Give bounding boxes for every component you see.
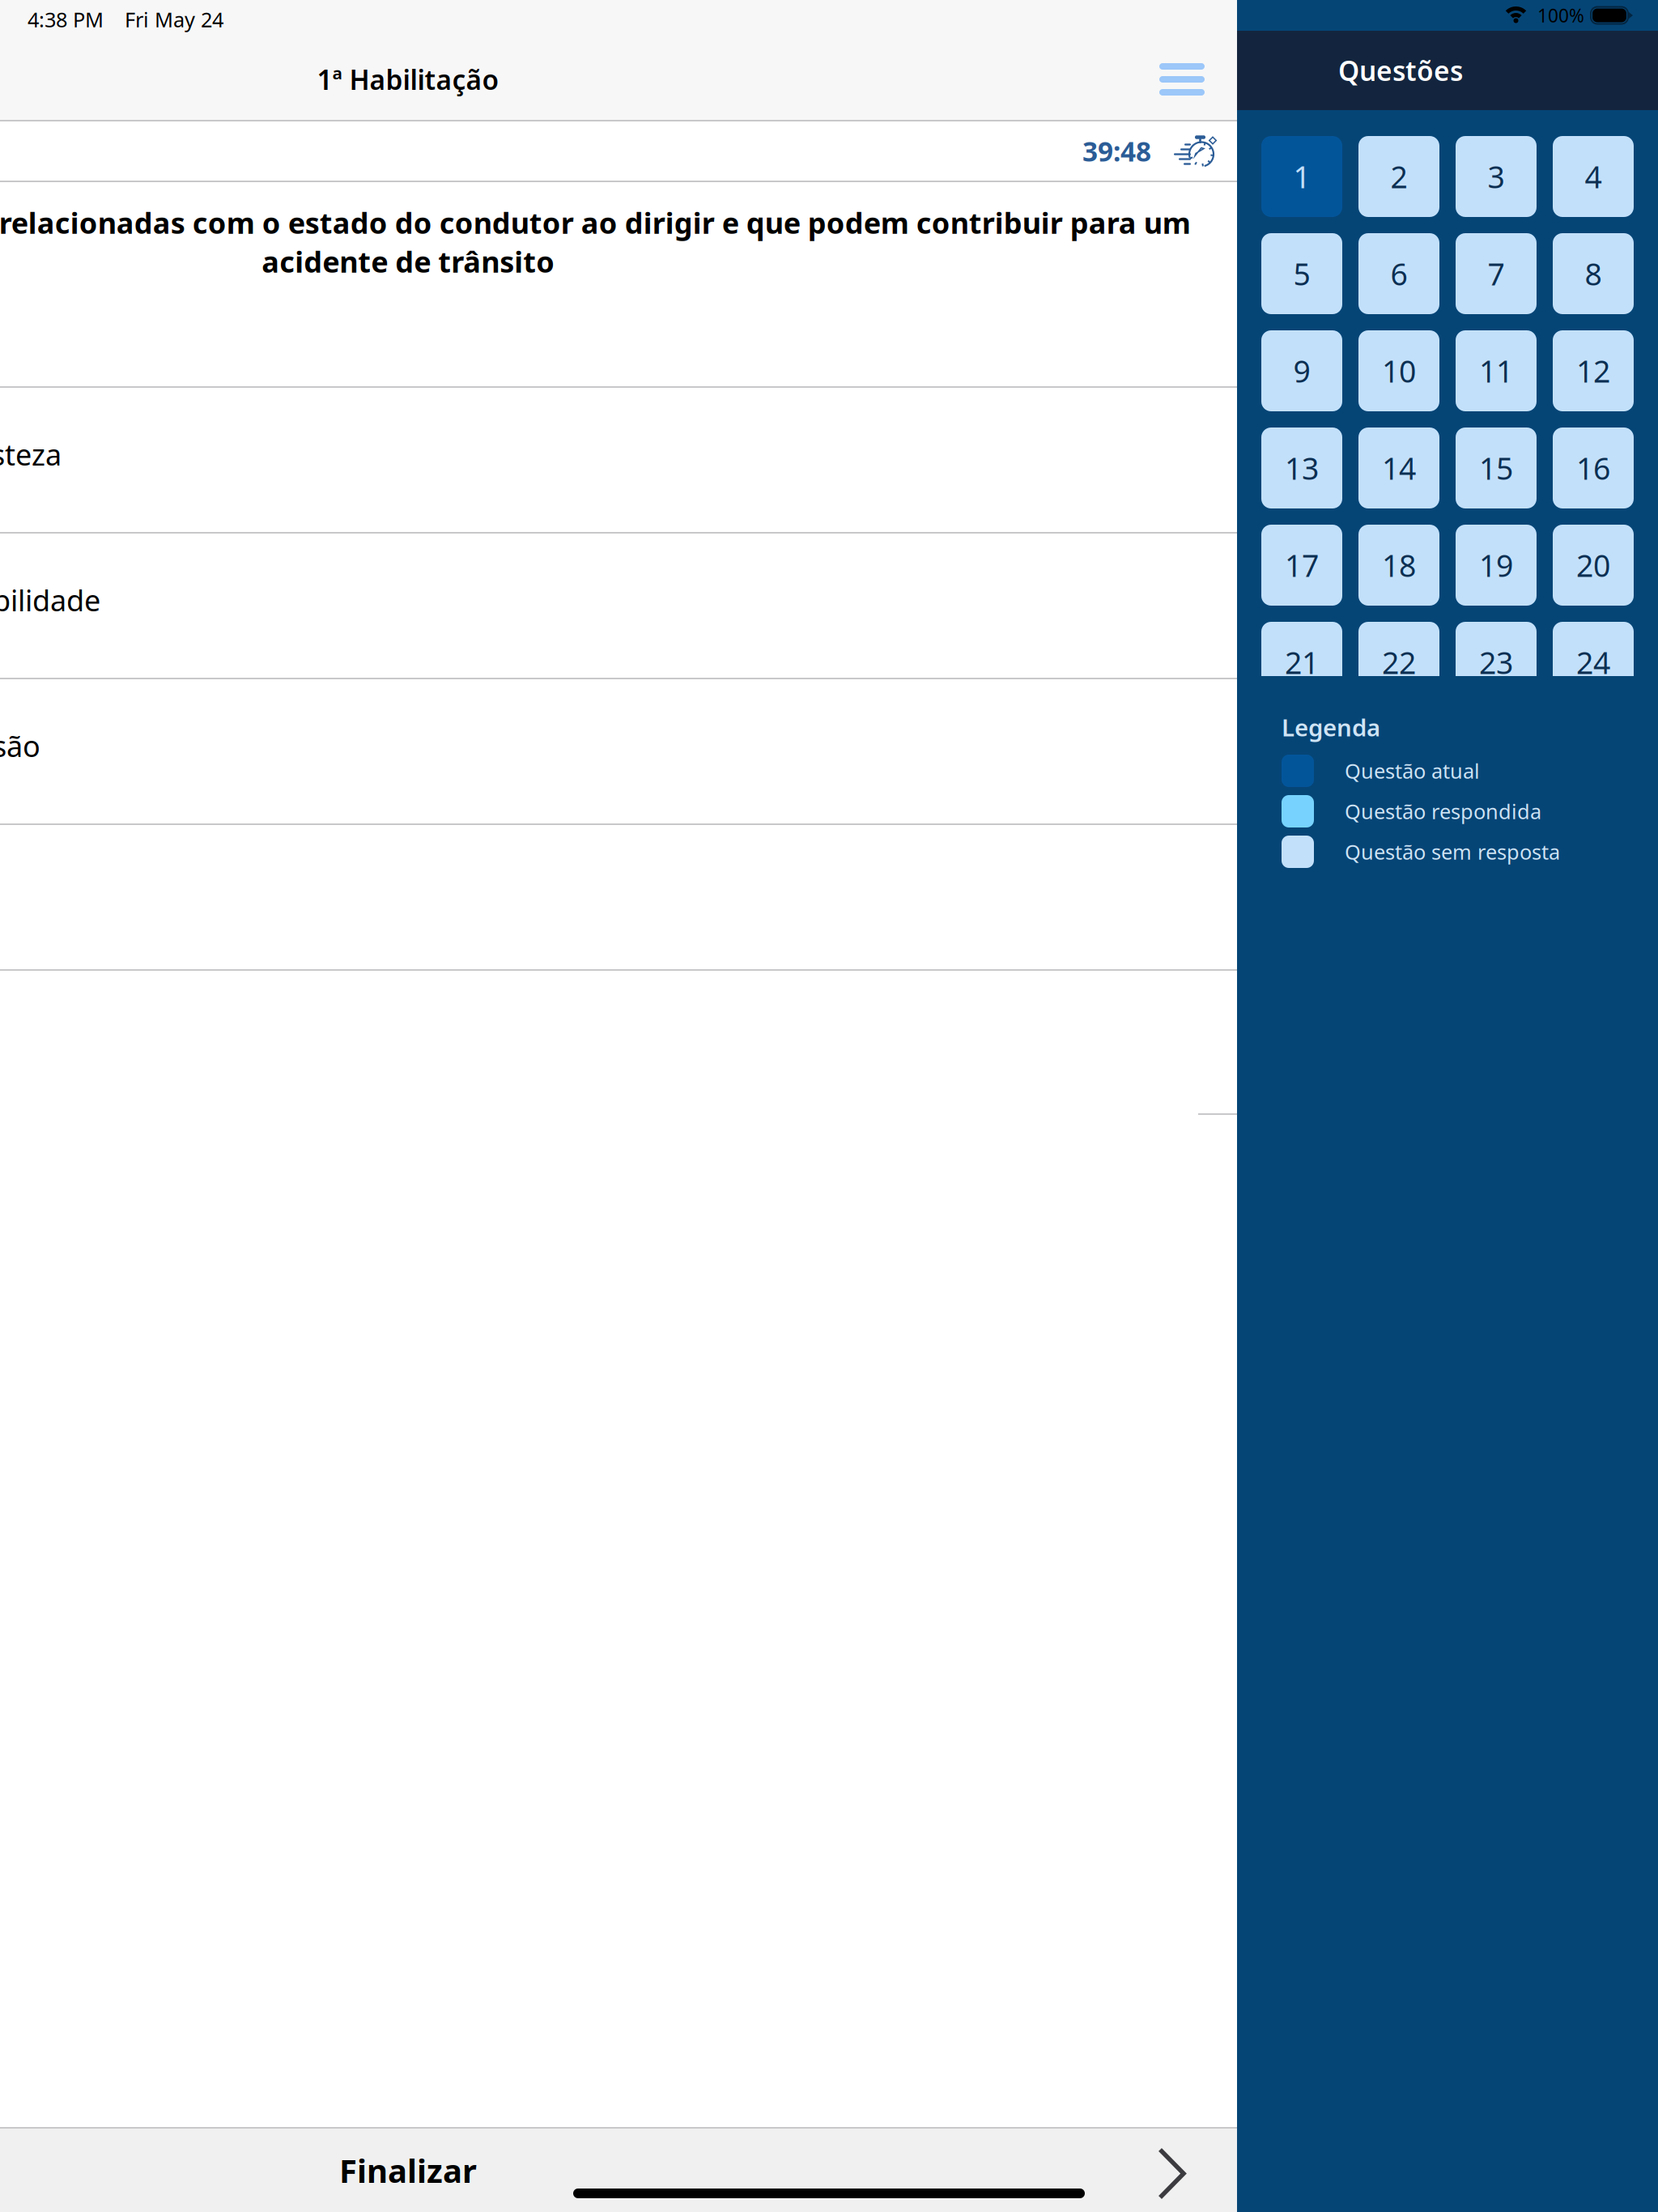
staticText: 11 [1479, 351, 1513, 391]
button[interactable]: Fome, sede, pressa e irritabilidade [0, 534, 1237, 679]
button[interactable]: Finalizar [303, 2129, 513, 2211]
staticText: Fome, sede, pressa e irritabilidade [0, 581, 100, 619]
button[interactable]: Questão 23 [1456, 622, 1537, 703]
staticText: 16 [1576, 448, 1610, 488]
button[interactable]: Questão 21 [1261, 622, 1342, 703]
staticText: 1 [1293, 156, 1310, 197]
staticText: Legenda [1282, 711, 1380, 743]
staticText: 22 [1382, 642, 1416, 682]
staticText: 21 [1285, 642, 1319, 682]
button[interactable]: Questão 16 [1553, 428, 1634, 508]
staticText: 10 [1382, 351, 1416, 391]
button[interactable]: Questão 24 [1553, 622, 1634, 703]
staticText: 7 [1488, 254, 1505, 294]
button[interactable]: Medo, ansiedade e depressão [0, 679, 1237, 825]
button[interactable]: Questão 22 [1358, 622, 1439, 703]
staticText: unicamente as condições relacionadas com… [0, 203, 1190, 281]
staticText: 18 [1382, 545, 1416, 585]
staticText: Questões [1338, 53, 1463, 88]
button[interactable]: Questão 18 [1358, 525, 1439, 606]
button[interactable]: Sono, cansaço, fadiga e tristeza [0, 388, 1237, 534]
staticText: 13 [1285, 448, 1319, 488]
staticText: 100% [1537, 3, 1584, 28]
button[interactable]: Questão 6 [1358, 233, 1439, 314]
staticText: 4 [1585, 156, 1602, 197]
staticText: 8 [1585, 254, 1602, 294]
button[interactable]: Próxima questão [1139, 2129, 1205, 2211]
button[interactable]: Questão 5 [1261, 233, 1342, 314]
button[interactable]: Menu [1143, 39, 1221, 120]
button[interactable]: Questão 9 [1261, 330, 1342, 411]
staticText: 15 [1479, 448, 1513, 488]
button[interactable]: Questão 10 [1358, 330, 1439, 411]
staticText: 1ª Habilitação [317, 61, 499, 97]
staticText: 4:38 PM [28, 6, 104, 33]
button[interactable]: Questão 17 [1261, 525, 1342, 606]
staticText: 5 [1293, 254, 1310, 294]
button[interactable]: Questão 1, atual [1261, 136, 1342, 217]
button[interactable]: Questão 20 [1553, 525, 1634, 606]
button[interactable]: Questão 3 [1456, 136, 1537, 217]
staticText: Questão atual [1345, 757, 1480, 784]
button[interactable]: Questão 13 [1261, 428, 1342, 508]
staticText: 6 [1390, 254, 1407, 294]
button[interactable]: Questão 11 [1456, 330, 1537, 411]
button[interactable]: Questão 12 [1553, 330, 1634, 411]
staticText: Fri May 24 [125, 6, 223, 33]
staticText: 20 [1576, 545, 1610, 585]
staticText: 12 [1576, 351, 1610, 391]
staticText: 24 [1576, 642, 1610, 682]
staticText: 19 [1479, 545, 1513, 585]
button[interactable]: Questão 8 [1553, 233, 1634, 314]
staticText: Finalizar [339, 2149, 477, 2192]
staticText: Questão respondida [1345, 798, 1541, 825]
staticText: 9 [1293, 351, 1310, 391]
button[interactable]: Calma, atenção e euforia [0, 825, 1237, 971]
staticText: 3 [1488, 156, 1505, 197]
staticText: Questão sem resposta [1345, 838, 1560, 865]
button[interactable]: Questão 19 [1456, 525, 1537, 606]
button[interactable]: Questão 4 [1553, 136, 1634, 217]
button[interactable]: Questão 7 [1456, 233, 1537, 314]
button[interactable]: Questão 14 [1358, 428, 1439, 508]
staticText: 14 [1382, 448, 1416, 488]
staticText: Medo, ansiedade e depressão [0, 726, 40, 765]
button[interactable]: Questão 2 [1358, 136, 1439, 217]
staticText: 39:48 [1082, 133, 1151, 169]
button[interactable]: Questão 15 [1456, 428, 1537, 508]
staticText: 2 [1390, 156, 1407, 197]
staticText: 17 [1285, 545, 1319, 585]
staticText: 23 [1479, 642, 1513, 682]
staticText: Sono, cansaço, fadiga e tristeza [0, 435, 62, 474]
